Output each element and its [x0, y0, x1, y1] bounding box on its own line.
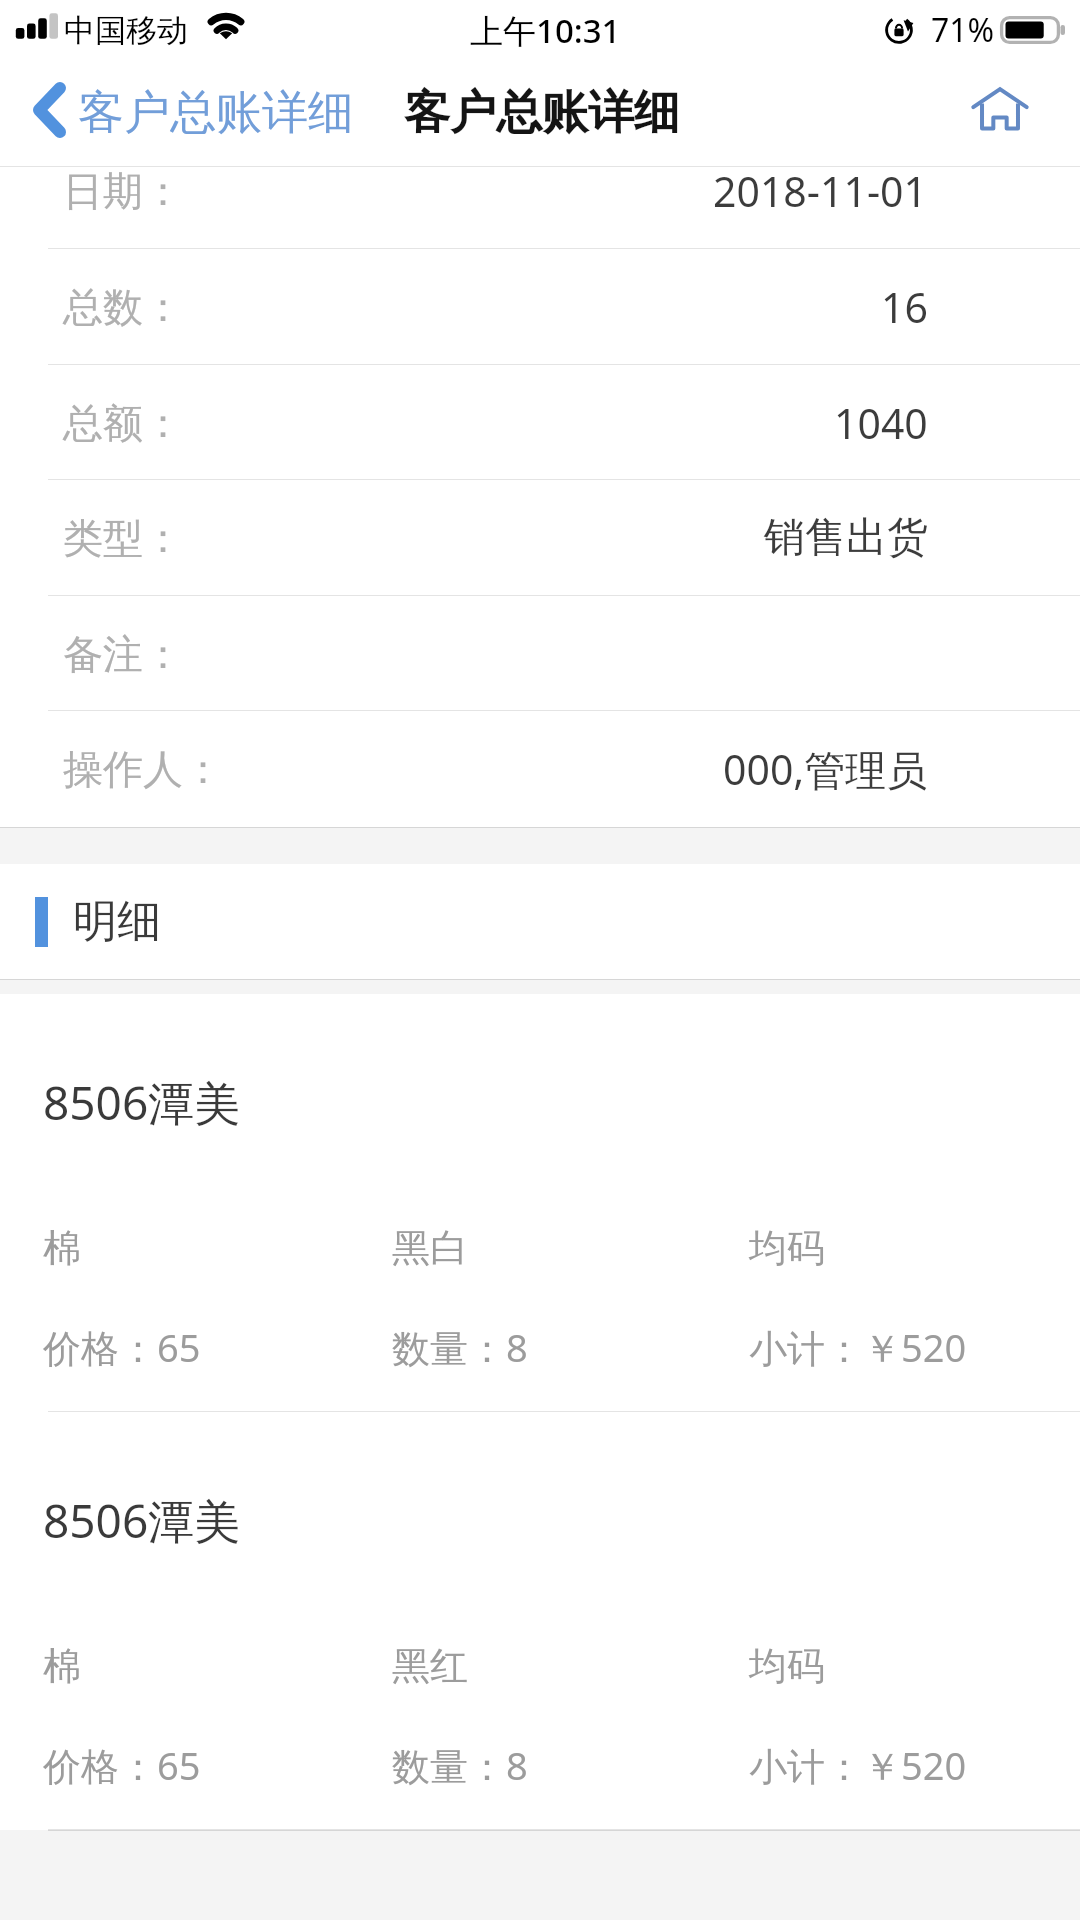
staticText: 日期：	[63, 166, 183, 216]
staticText: 2018-11-01	[713, 163, 928, 219]
button[interactable]: 操作人：	[0, 711, 1080, 827]
staticText: 数量：8	[392, 1321, 749, 1373]
button[interactable]: 日期：	[0, 167, 1080, 249]
staticText: 000,管理员	[723, 741, 928, 797]
button[interactable]: 8506潭美	[0, 994, 1080, 1412]
staticText: 8506潭美	[43, 1489, 241, 1552]
button[interactable]: 明细	[0, 864, 1080, 979]
button[interactable]: 客户总账详细	[0, 60, 370, 166]
staticText: 总额：	[63, 398, 183, 448]
staticText: 明细	[73, 894, 161, 949]
staticText: 黑白	[392, 1224, 749, 1272]
staticText: 16	[881, 279, 928, 335]
staticText: 小计：￥520	[749, 1321, 967, 1373]
staticText: 棉	[43, 1224, 392, 1272]
staticText: 1040	[834, 395, 928, 451]
staticText: 71%	[931, 8, 995, 52]
staticText: 总数：	[63, 282, 183, 332]
staticText: 小计：￥520	[749, 1739, 967, 1791]
staticText: 中国移动	[64, 11, 188, 50]
button[interactable]: Home	[971, 88, 1029, 136]
staticText: 客户总账详细	[404, 84, 680, 142]
staticText: 均码	[749, 1642, 825, 1690]
button[interactable]: 总数：	[0, 249, 1080, 365]
button[interactable]: 备注：	[0, 596, 1080, 711]
button[interactable]: 8506潭美	[0, 1412, 1080, 1830]
staticText: 操作人：	[63, 744, 223, 794]
button[interactable]: 类型：	[0, 480, 1080, 596]
staticText: 8506潭美	[43, 1071, 241, 1134]
staticText: 类型：	[63, 513, 183, 563]
staticText: 数量：8	[392, 1739, 749, 1791]
staticText: 客户总账详细	[78, 84, 354, 142]
staticText: 棉	[43, 1642, 392, 1690]
button[interactable]: 总额：	[0, 365, 1080, 480]
staticText: 价格：65	[43, 1739, 392, 1791]
staticText: 价格：65	[43, 1321, 392, 1373]
staticText: 销售出货	[764, 512, 928, 564]
staticText: 备注：	[63, 629, 183, 679]
staticText: 黑红	[392, 1642, 749, 1690]
staticText: 上午10:31	[470, 8, 621, 53]
staticText: 均码	[749, 1224, 825, 1272]
